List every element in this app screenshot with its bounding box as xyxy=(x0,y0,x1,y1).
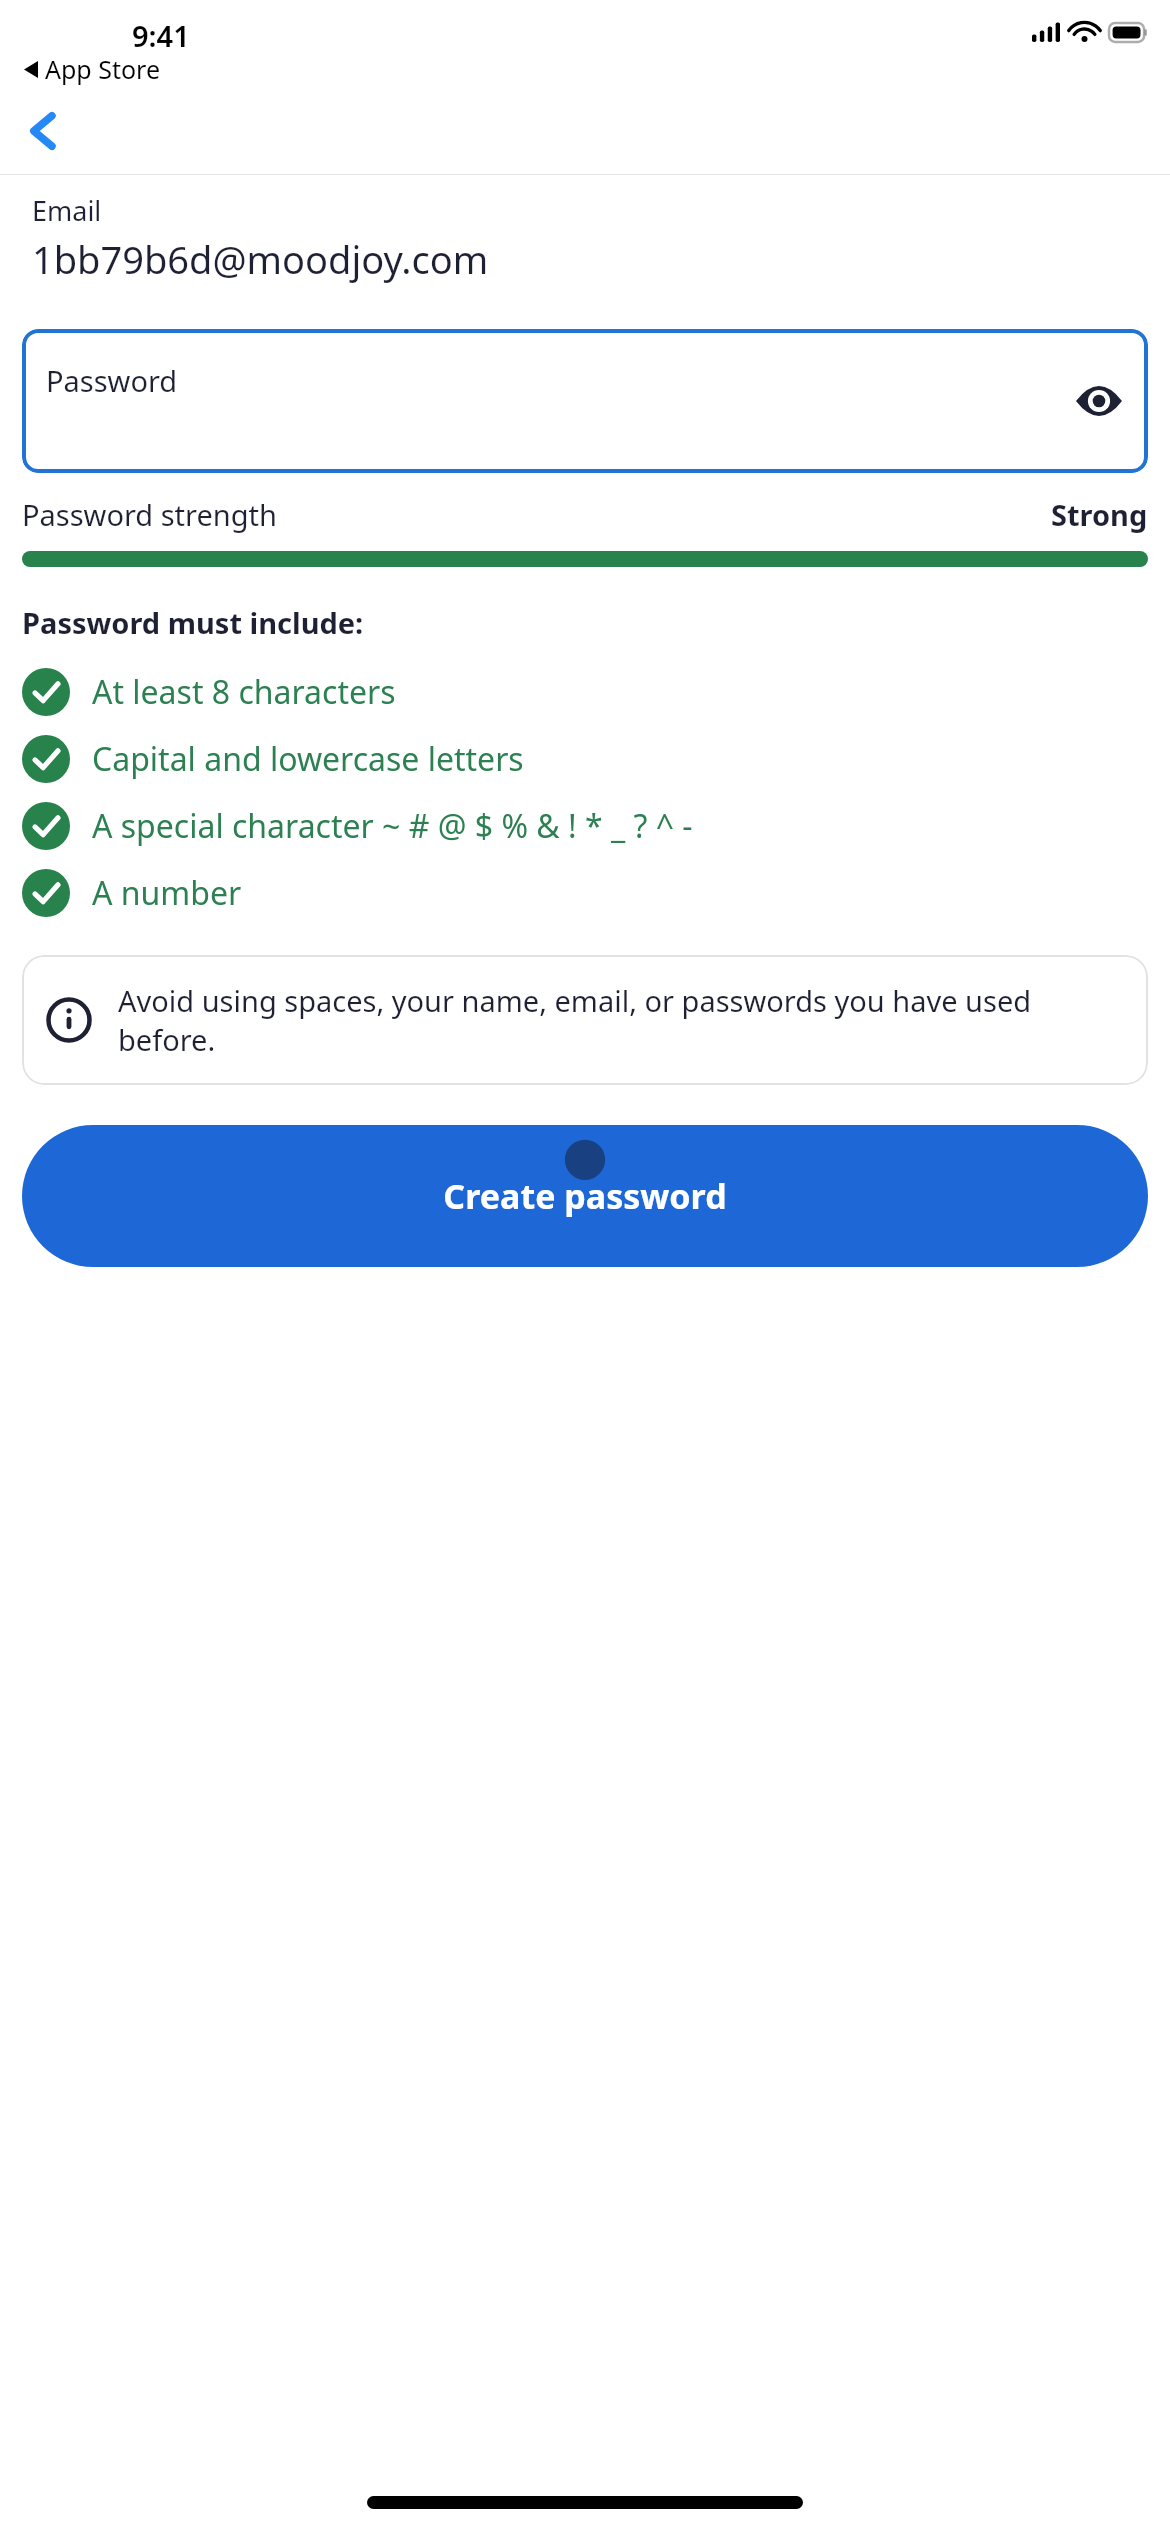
staticText: Password xyxy=(46,361,178,400)
button[interactable]: A number xyxy=(22,869,1148,917)
staticText: Password strength xyxy=(22,495,277,534)
staticText: 9:41 xyxy=(132,16,190,55)
staticText: A number xyxy=(92,871,242,915)
button[interactable]: Password xyxy=(22,329,1148,473)
staticText: Capital and lowercase letters xyxy=(92,737,524,781)
staticText: App Store xyxy=(45,52,161,86)
button[interactable]: Capital and lowercase letters xyxy=(22,735,1148,783)
staticText: Password must include: xyxy=(22,603,364,642)
button[interactable]: Show password xyxy=(1068,370,1130,432)
staticText: Avoid using spaces, your name, email, or… xyxy=(118,981,1124,1059)
staticText: At least 8 characters xyxy=(92,670,396,714)
staticText: Strong xyxy=(1051,495,1148,534)
button[interactable]: A special character ~ # @ $ % & ! * _ ? … xyxy=(22,802,1148,850)
button[interactable]: Back xyxy=(8,98,74,164)
button[interactable]: Create password xyxy=(22,1125,1148,1267)
button[interactable]: Avoid using spaces, your name, email, or… xyxy=(22,955,1148,1085)
button[interactable]: At least 8 characters xyxy=(22,668,1148,716)
staticText: 1bb79b6d@moodjoy.com xyxy=(32,233,489,285)
staticText: Email xyxy=(32,192,102,229)
staticText: A special character ~ # @ $ % & ! * _ ? … xyxy=(92,804,693,848)
staticText: Create password xyxy=(443,1173,727,1219)
